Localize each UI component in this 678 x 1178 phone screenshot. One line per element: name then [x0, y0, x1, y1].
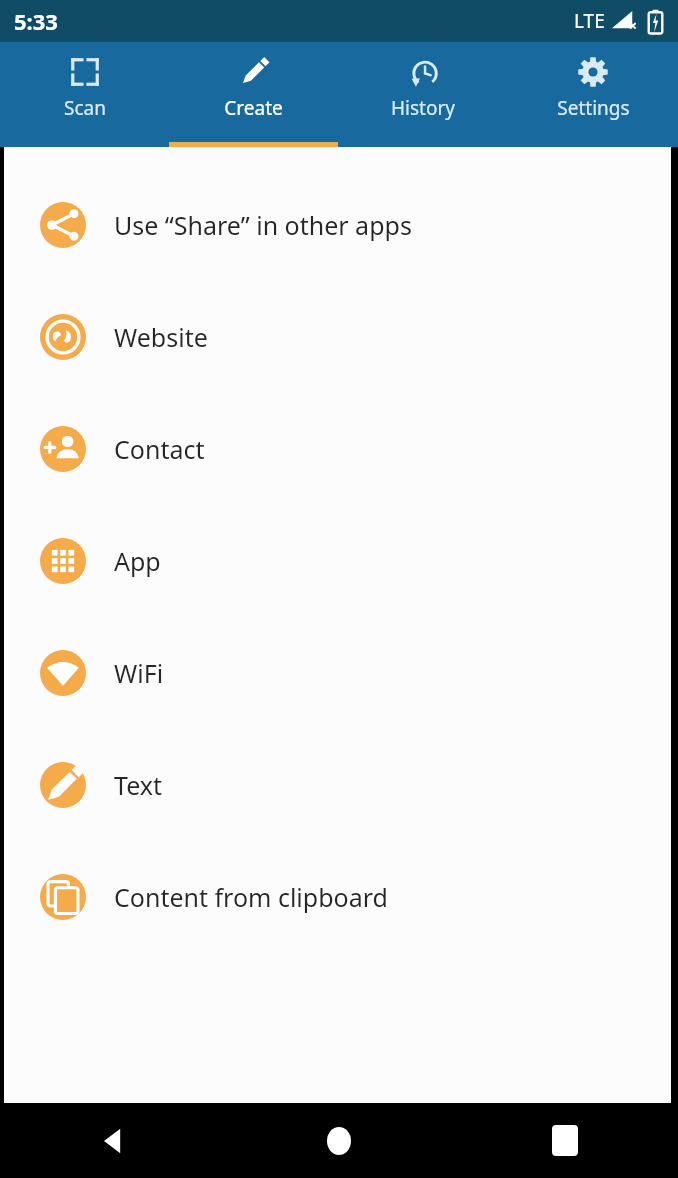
staticText: Text	[114, 768, 163, 802]
button[interactable]: Scan	[0, 42, 169, 147]
staticText: History	[391, 95, 455, 121]
staticText: Settings	[557, 95, 630, 121]
button[interactable]: Recent apps	[452, 1103, 678, 1178]
button[interactable]: Back	[0, 1103, 226, 1178]
button[interactable]: Create	[169, 42, 338, 147]
staticText: Contact	[114, 432, 205, 466]
staticText: App	[114, 544, 161, 578]
staticText: Use “Share” in other apps	[114, 208, 412, 242]
staticText: Website	[114, 320, 208, 354]
button[interactable]: Use “Share” in other apps	[4, 169, 671, 281]
button[interactable]: WiFi	[4, 617, 671, 729]
button[interactable]: App	[4, 505, 671, 617]
button[interactable]: Contact	[4, 393, 671, 505]
button[interactable]: Text	[4, 729, 671, 841]
button[interactable]: Home	[226, 1103, 452, 1178]
staticText: Content from clipboard	[114, 880, 388, 914]
button[interactable]: History	[338, 42, 508, 147]
button[interactable]: Settings	[508, 42, 678, 147]
staticText: Create	[224, 95, 283, 121]
staticText: WiFi	[114, 656, 164, 690]
button[interactable]: Content from clipboard	[4, 841, 671, 953]
staticText: LTE	[574, 8, 605, 34]
staticText: Scan	[64, 95, 106, 121]
button[interactable]: Website	[4, 281, 671, 393]
staticText: 5:33	[14, 6, 58, 36]
